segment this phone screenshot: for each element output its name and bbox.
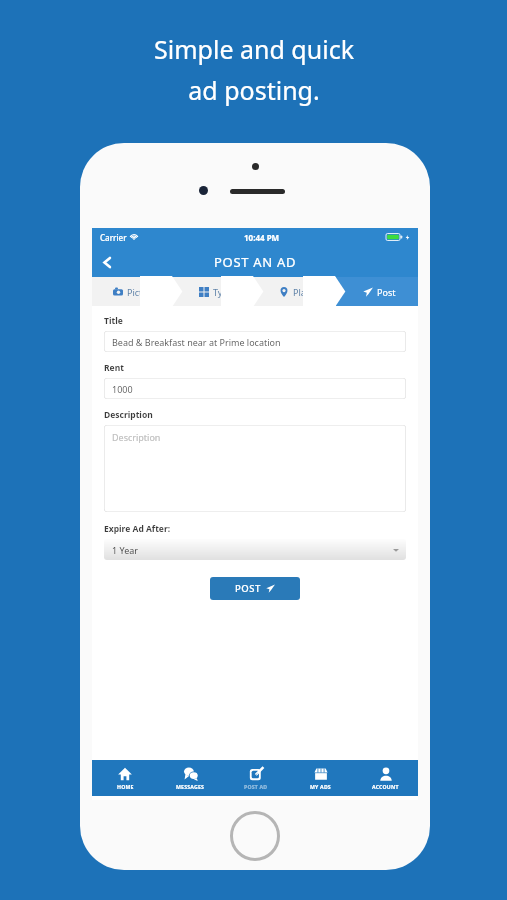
staticText: Title bbox=[104, 315, 123, 327]
staticText: Rent bbox=[104, 362, 124, 374]
staticText: MESSAGES bbox=[176, 783, 205, 790]
staticText: Place bbox=[293, 286, 316, 298]
staticText: Simple and quick bbox=[154, 32, 354, 66]
button[interactable]: HOME bbox=[92, 760, 158, 796]
button[interactable]: MESSAGES bbox=[158, 760, 223, 796]
staticText: Description bbox=[112, 431, 161, 443]
button[interactable]: POST bbox=[210, 577, 300, 600]
staticText: ACCOUNT bbox=[372, 783, 399, 790]
button[interactable]: Bead & Breakfast near at Prime location bbox=[104, 331, 406, 352]
button[interactable]: 1000 bbox=[104, 378, 406, 399]
button[interactable]: Picture bbox=[92, 277, 173, 306]
button[interactable]: Post bbox=[336, 277, 418, 306]
staticText: HOME bbox=[117, 783, 134, 790]
staticText: Type bbox=[213, 286, 234, 298]
button[interactable]: Description bbox=[104, 425, 406, 512]
button[interactable]: POST AD bbox=[223, 760, 288, 796]
staticText: POST bbox=[235, 582, 261, 595]
staticText: Expire Ad After: bbox=[104, 523, 171, 535]
button[interactable]: Place bbox=[254, 277, 336, 306]
staticText: Bead & Breakfast near at Prime location bbox=[112, 336, 281, 348]
staticText: Post bbox=[377, 286, 396, 298]
staticText: POST AN AD bbox=[214, 253, 297, 271]
button[interactable]: 1 Year bbox=[104, 539, 406, 560]
button[interactable]: Back bbox=[92, 247, 122, 277]
button[interactable]: MY ADS bbox=[288, 760, 353, 796]
staticText: Picture bbox=[127, 286, 157, 298]
button[interactable]: ACCOUNT bbox=[353, 760, 418, 796]
staticText: 1 Year bbox=[112, 544, 138, 556]
staticText: Description bbox=[104, 409, 153, 421]
staticText: ad posting. bbox=[188, 73, 320, 107]
staticText: Carrier bbox=[100, 232, 127, 243]
staticText: 10:44 PM bbox=[244, 232, 280, 243]
staticText: 1000 bbox=[112, 383, 133, 395]
staticText: POST AD bbox=[244, 783, 268, 790]
button[interactable]: Type bbox=[173, 277, 254, 306]
staticText: MY ADS bbox=[310, 783, 331, 790]
